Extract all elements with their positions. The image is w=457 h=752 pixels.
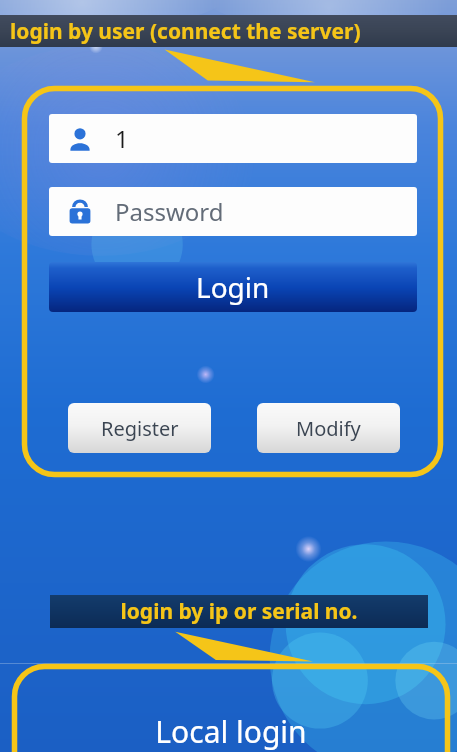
- button[interactable]: Modify: [257, 403, 400, 453]
- button[interactable]: Username: [49, 114, 417, 163]
- staticText: Local login: [12, 711, 450, 752]
- staticText: login by user (connect the server): [10, 17, 361, 46]
- button[interactable]: Password: [49, 187, 417, 236]
- staticText: login by ip or serial no.: [120, 597, 358, 626]
- staticText: 1: [115, 122, 129, 155]
- staticText: Register: [101, 415, 179, 442]
- staticText: Login: [196, 268, 270, 306]
- button[interactable]: login by ip or serial no.: [50, 595, 428, 628]
- button[interactable]: Login: [49, 262, 417, 312]
- button[interactable]: login by user (connect the server): [0, 15, 457, 47]
- button[interactable]: Local login: [12, 664, 457, 752]
- button[interactable]: Register: [68, 403, 211, 453]
- staticText: Modify: [296, 415, 361, 442]
- staticText: Password: [115, 195, 224, 228]
